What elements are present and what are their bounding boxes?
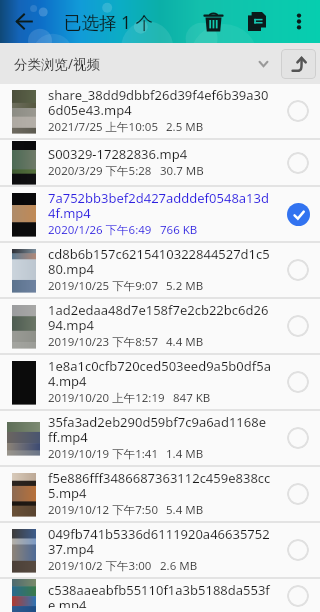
staticText: 5.4 MB xyxy=(166,504,204,517)
staticText: 7a752bb3bef2d427adddef0548a13d4f.mp4 xyxy=(48,191,273,221)
staticText: 2019/10/2 下午3:00 xyxy=(48,560,152,573)
button[interactable]: 049fb741b5336d6111920a4663575237.mp4 xyxy=(0,523,320,577)
staticText: 2019/10/25 下午9:07 xyxy=(48,280,158,293)
button[interactable]: c538aaeabfb55110f1a3b5188da553fe.mp4 xyxy=(0,579,320,612)
button[interactable]: Up one level xyxy=(281,49,316,79)
button[interactable]: Selected xyxy=(276,192,320,236)
staticText: 2020/1/26 下午6:49 xyxy=(48,224,152,237)
staticText: f5e886fff3486687363112c459e838cc5.mp4 xyxy=(48,471,273,501)
staticText: 35fa3ad2eb290d59bf7c9a6ad1168eff.mp4 xyxy=(48,415,273,445)
staticText: 30.7 MB xyxy=(160,165,204,178)
staticText: 1e8a1c0cfb720ced503eed9a5b0df5a4.mp4 xyxy=(48,359,273,389)
staticText: 1.4 MB xyxy=(166,448,204,461)
staticText: 2021/7/25 上午10:05 xyxy=(48,121,158,134)
button[interactable]: f5e886fff3486687363112c459e838cc5.mp4 xyxy=(0,467,320,521)
staticText: cd8b6b157c6215410322844527d1c580.mp4 xyxy=(48,247,273,277)
button[interactable]: Not selected xyxy=(276,248,320,292)
button[interactable]: Not selected xyxy=(276,472,320,516)
button[interactable]: 1e8a1c0cfb720ced503eed9a5b0df5a4.mp4 xyxy=(0,355,320,409)
staticText: 2019/10/20 上午12:19 xyxy=(48,392,165,405)
staticText: 4.4 MB xyxy=(166,336,204,349)
staticText: c538aaeabfb55110f1a3b5188da553fe.mp4 xyxy=(48,583,273,608)
staticText: 2020/3/29 下午5:28 xyxy=(48,165,152,178)
button[interactable]: S00329-17282836.mp4 xyxy=(0,140,320,185)
button[interactable]: 7a752bb3bef2d427adddef0548a13d4f.mp4 xyxy=(0,187,320,241)
staticText: share_38dd9dbbf26d39f4ef6b39a306d05e43.m… xyxy=(48,88,273,118)
button[interactable]: 1ad2edaa48d7e158f7e2cb22bc6d2694.mp4 xyxy=(0,299,320,353)
staticText: 分类浏览/视频 xyxy=(14,55,101,73)
staticText: 766 KB xyxy=(160,224,198,237)
button[interactable]: Not selected xyxy=(276,304,320,348)
button[interactable]: More options xyxy=(278,0,320,43)
button[interactable]: Delete xyxy=(192,0,235,43)
staticText: 049fb741b5336d6111920a4663575237.mp4 xyxy=(48,527,273,557)
button[interactable]: Not selected xyxy=(276,141,320,185)
button[interactable]: 35fa3ad2eb290d59bf7c9a6ad1168eff.mp4 xyxy=(0,411,320,465)
button[interactable]: Not selected xyxy=(276,416,320,460)
button[interactable]: Copy xyxy=(235,0,278,43)
button[interactable]: Not selected xyxy=(276,89,320,133)
staticText: 已选择 1 个 xyxy=(64,10,154,34)
button[interactable]: share_38dd9dbbf26d39f4ef6b39a306d05e43.m… xyxy=(0,84,320,138)
button[interactable]: Back xyxy=(0,0,48,43)
staticText: 847 KB xyxy=(173,392,211,405)
staticText: 2019/10/12 下午7:50 xyxy=(48,504,158,517)
button[interactable]: cd8b6b157c6215410322844527d1c580.mp4 xyxy=(0,243,320,297)
staticText: S00329-17282836.mp4 xyxy=(48,147,188,162)
staticText: 2019/10/23 下午8:57 xyxy=(48,336,158,349)
button[interactable]: Expand xyxy=(251,52,275,76)
staticText: 1ad2edaa48d7e158f7e2cb22bc6d2694.mp4 xyxy=(48,303,273,333)
staticText: 2.5 MB xyxy=(166,121,204,134)
button[interactable]: Not selected xyxy=(276,360,320,404)
button[interactable]: Not selected xyxy=(276,528,320,572)
button[interactable]: Not selected xyxy=(276,579,320,612)
staticText: 5.2 MB xyxy=(166,280,204,293)
staticText: 2.6 MB xyxy=(160,560,198,573)
staticText: 2019/10/19 下午1:41 xyxy=(48,448,158,461)
